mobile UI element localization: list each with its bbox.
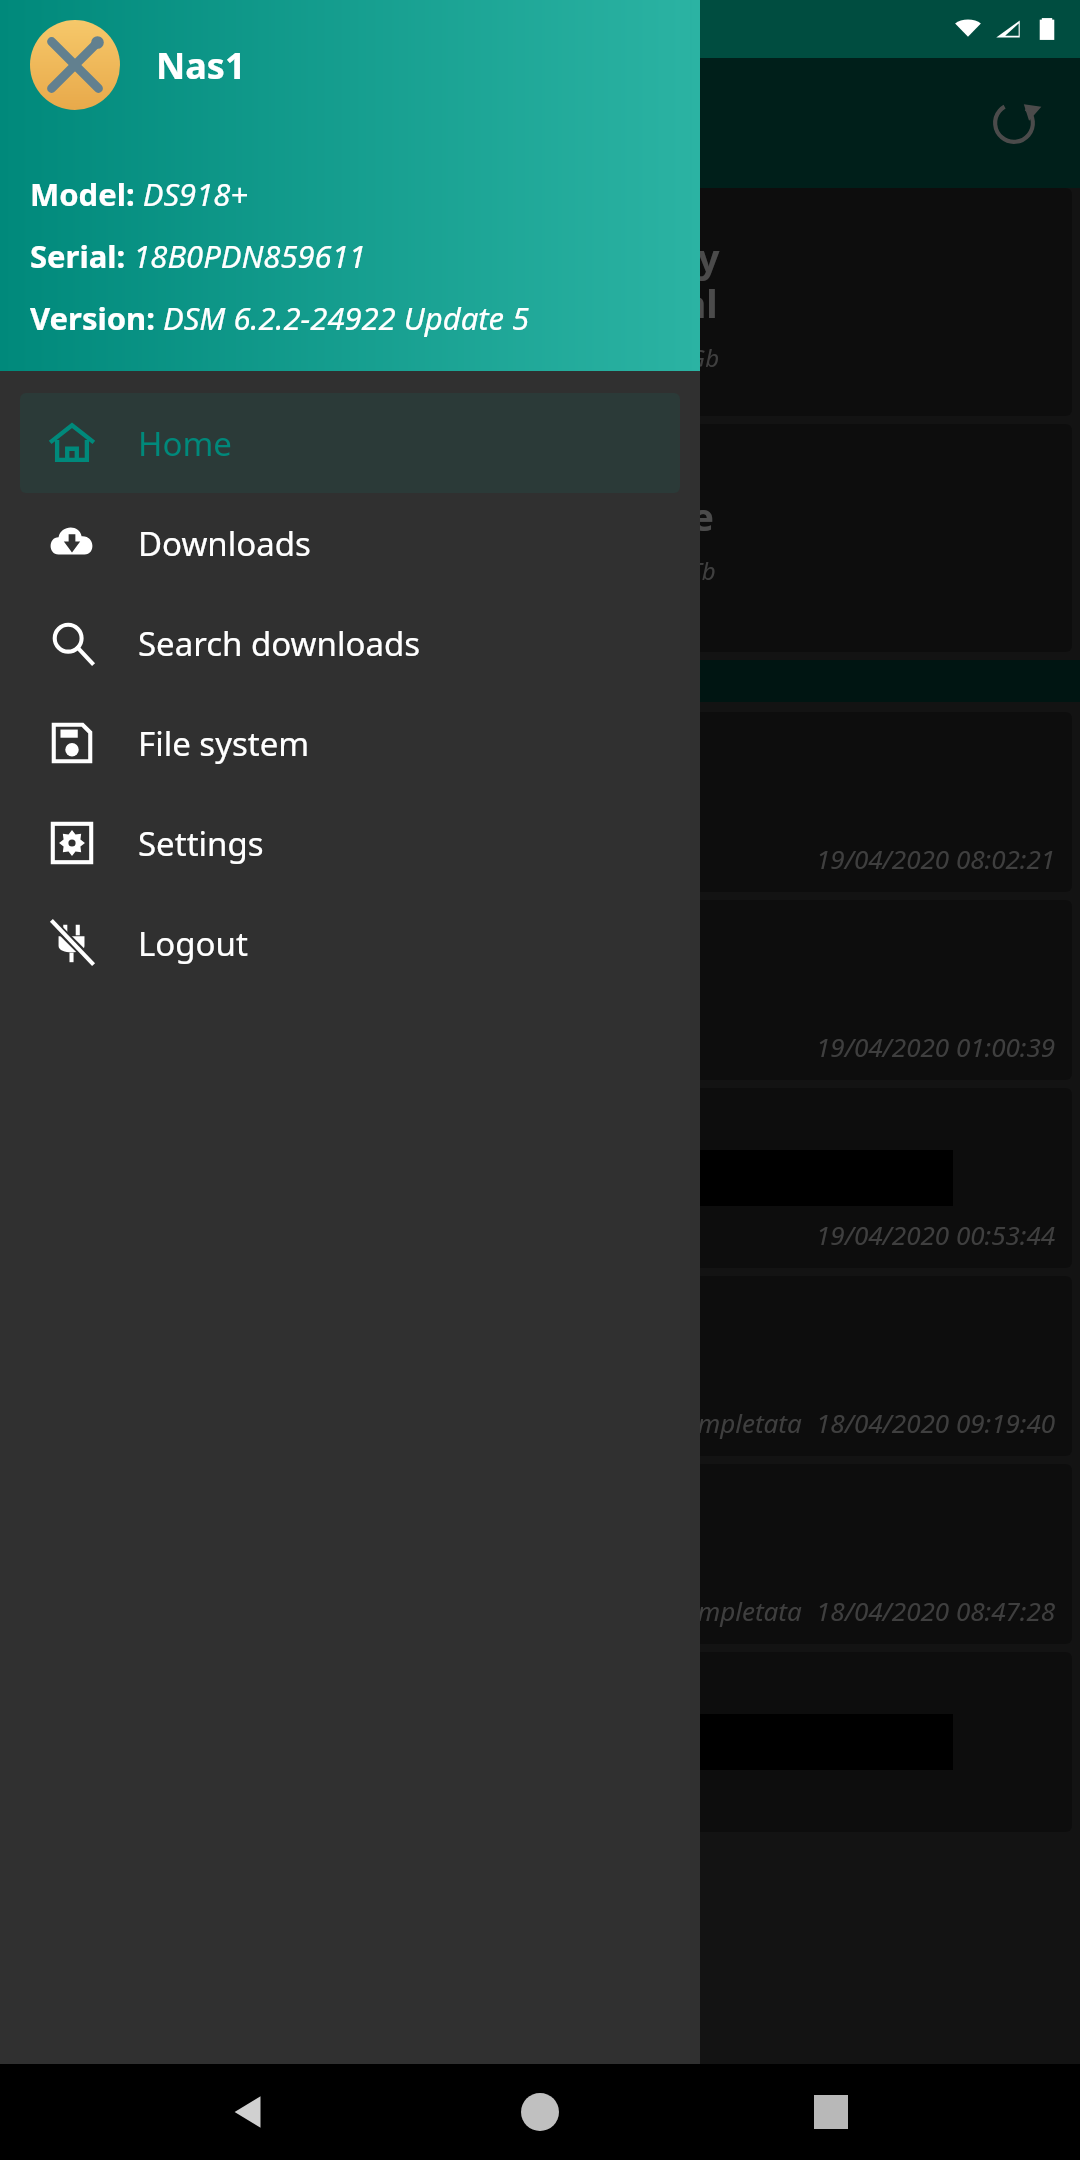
button[interactable]: File system: [0, 693, 700, 793]
staticText: Nas1: [156, 41, 246, 90]
staticText: completata: [671, 1405, 802, 1440]
button[interactable]: 19/04/2020 01:00:39: [8, 900, 1072, 1080]
staticText: Home: [138, 421, 232, 466]
staticText: 4:34: [18, 12, 70, 47]
button[interactable]: Storage: [8, 424, 1072, 652]
staticText: 19/04/2020 00:53:44: [816, 1217, 1056, 1252]
button[interactable]: completata: [8, 1276, 1072, 1456]
button[interactable]: Back: [207, 2070, 291, 2154]
staticText: 3.6 Gb / 3.8 Gb: [560, 341, 720, 374]
button[interactable]: Refresh: [984, 93, 1044, 153]
staticText: completata: [671, 1593, 802, 1628]
button[interactable]: Home: [498, 2070, 582, 2154]
staticText: File system: [138, 721, 310, 766]
button[interactable]: completata: [8, 1464, 1072, 1644]
staticText: 7.4 Tb / 8.8 Tb: [565, 554, 716, 587]
staticText: 19/04/2020 01:00:39: [816, 1029, 1056, 1064]
button[interactable]: Logout: [0, 893, 700, 993]
staticText: Storage: [567, 490, 714, 542]
button[interactable]: Downloads: [0, 493, 700, 593]
staticText: Settings: [138, 821, 264, 866]
staticText: Memory Physical: [561, 231, 720, 329]
button[interactable]: 19/04/2020 00:53:44: [8, 1088, 1072, 1268]
staticText: 19/04/2020 08:02:21: [816, 841, 1056, 876]
button[interactable]: 19/04/2020 08:02:21: [8, 712, 1072, 892]
button[interactable]: Memory Physical: [8, 188, 1072, 416]
button[interactable]: [8, 1652, 1072, 1832]
staticText: Version: DSM 6.2.2-24922 Update 5: [30, 297, 530, 339]
staticText: Search downloads: [138, 621, 421, 666]
staticText: Model: DS918+: [30, 173, 249, 215]
button[interactable]: Search downloads: [0, 593, 700, 693]
staticText: 18/04/2020 08:47:28: [816, 1593, 1056, 1628]
staticText: 18/04/2020 09:19:40: [816, 1405, 1056, 1440]
staticText: Downloads: [138, 521, 311, 566]
staticText: Serial: 18B0PDN859611: [30, 235, 366, 277]
button[interactable]: Home: [20, 393, 680, 493]
button[interactable]: Settings: [0, 793, 700, 893]
button[interactable]: Recent apps: [789, 2070, 873, 2154]
staticText: Logout: [138, 921, 248, 966]
